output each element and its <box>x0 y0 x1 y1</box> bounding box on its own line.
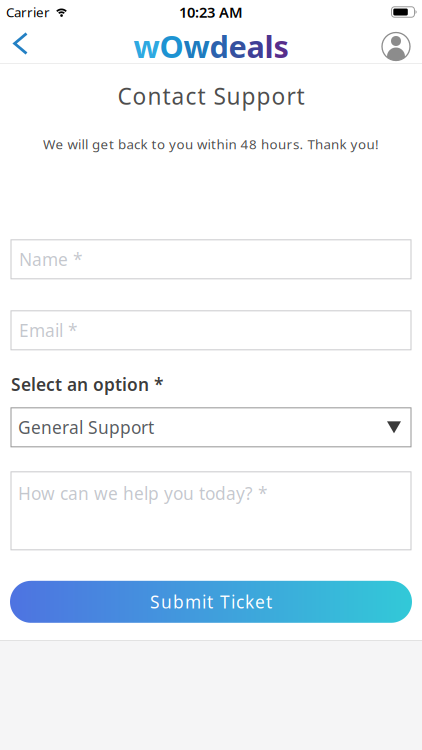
button[interactable] <box>0 32 29 55</box>
button[interactable] <box>382 26 422 60</box>
staticText: Submit Ticket <box>150 590 272 613</box>
staticText: O <box>159 26 183 66</box>
staticText: How can we help you today? * <box>18 482 268 505</box>
staticText: We will get back to you within 48 hours.… <box>43 135 379 153</box>
staticText: w <box>133 26 159 66</box>
staticText: e <box>228 26 246 66</box>
staticText: d <box>209 26 228 66</box>
staticText: 10:23 AM <box>179 2 243 22</box>
staticText: General Support <box>18 416 154 439</box>
button[interactable]: Name * <box>11 240 411 279</box>
staticText: l <box>264 26 273 66</box>
staticText: s <box>273 26 288 66</box>
staticText: Email * <box>19 319 78 342</box>
button[interactable]: Submit Ticket <box>10 581 412 623</box>
staticText: Contact Support <box>117 81 304 111</box>
button[interactable]: General Support <box>11 408 411 447</box>
staticText: a <box>246 26 264 66</box>
staticText: Select an option * <box>11 373 163 396</box>
staticText: Carrier <box>6 3 50 21</box>
staticText: w <box>183 26 209 66</box>
button[interactable]: Email * <box>11 311 411 350</box>
button[interactable]: How can we help you today? * <box>11 472 411 550</box>
staticText: Name * <box>19 248 83 271</box>
